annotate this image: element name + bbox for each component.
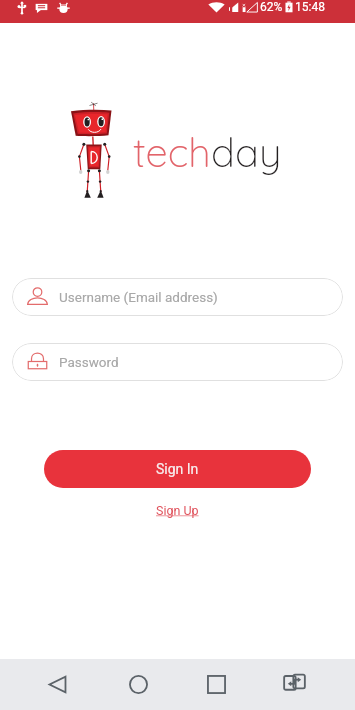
button[interactable]: Password — [12, 343, 343, 381]
staticText: tech — [133, 127, 211, 177]
button[interactable]: Recent apps — [193, 659, 240, 710]
staticText: Password — [59, 354, 119, 370]
staticText: 62% — [260, 0, 283, 14]
staticText: 15:48 — [295, 0, 325, 14]
button[interactable]: Switch screens — [269, 659, 320, 710]
button[interactable]: Back — [35, 659, 80, 710]
button[interactable]: Sign Up — [148, 501, 207, 520]
staticText: Username (Email address) — [59, 289, 218, 305]
button[interactable]: Sign In — [44, 450, 311, 488]
button[interactable]: Home — [115, 659, 162, 710]
staticText: Sign In — [156, 461, 199, 477]
button[interactable]: Username (Email address) — [12, 278, 343, 316]
staticText: Sign Up — [156, 503, 199, 518]
staticText: day — [211, 127, 282, 177]
